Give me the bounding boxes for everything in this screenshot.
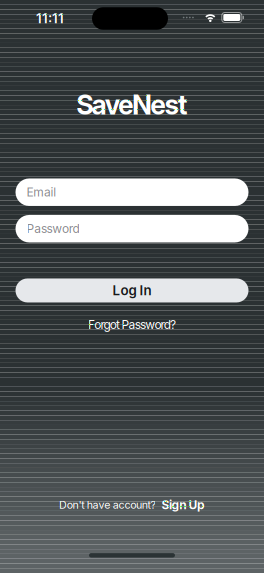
staticText: Sign Up	[161, 498, 205, 512]
button[interactable]: Email	[15, 178, 248, 206]
staticText: Forgot Password?	[88, 317, 176, 332]
staticText: Log In	[112, 283, 151, 298]
staticText: SaveNest	[76, 89, 188, 120]
staticText: Password	[26, 222, 79, 236]
button[interactable]: Forgot Password?	[88, 317, 176, 332]
button[interactable]: Log In	[15, 278, 248, 302]
button[interactable]: Sign Up	[161, 498, 205, 512]
staticText: Don't have account?	[59, 499, 155, 511]
staticText: Email	[26, 185, 56, 199]
button[interactable]: Password	[15, 215, 248, 242]
staticText: 11:11	[36, 11, 64, 26]
